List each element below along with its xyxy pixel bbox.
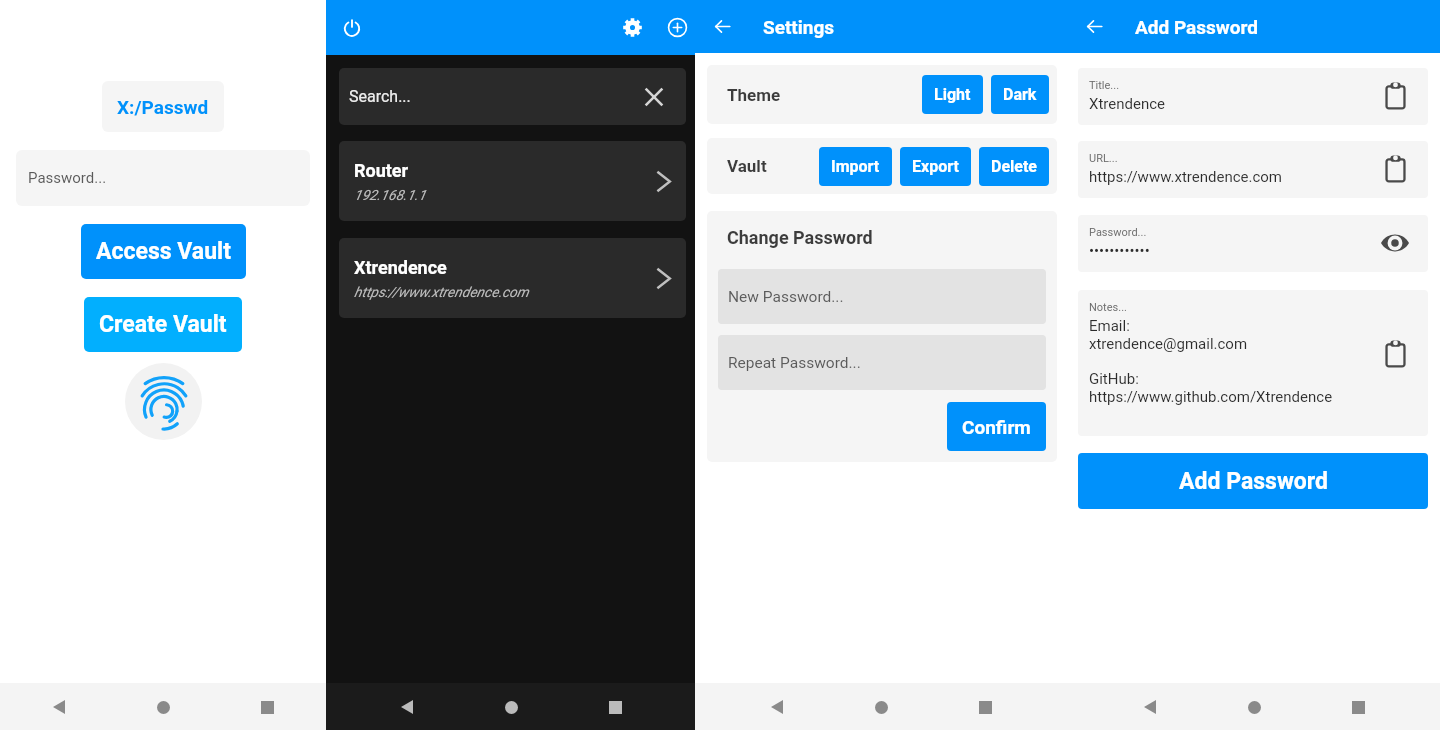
staticText: Search... [349, 87, 411, 106]
button[interactable]: Copy [1378, 79, 1412, 113]
button[interactable]: Password... [16, 150, 310, 206]
button[interactable]: Home [1231, 684, 1277, 730]
staticText: Vault [727, 156, 767, 176]
staticText: Confirm [962, 416, 1031, 438]
staticText: Password... [28, 169, 107, 187]
button[interactable]: Password... [1078, 215, 1428, 272]
staticText: New Password... [728, 288, 844, 306]
button[interactable]: Copy [1378, 152, 1412, 186]
button[interactable]: Confirm [947, 402, 1046, 451]
staticText: Repeat Password... [728, 354, 861, 372]
button[interactable]: Recents [592, 684, 638, 730]
staticText: 192.168.1.1 [354, 187, 426, 203]
button[interactable]: Recents [244, 684, 290, 730]
staticText: https://www.github.com/Xtrendence [1089, 388, 1333, 406]
button[interactable]: Dark [991, 75, 1049, 114]
button[interactable]: Back [1076, 8, 1113, 45]
button[interactable]: New Password... [718, 269, 1046, 324]
button[interactable]: Create Vault [84, 297, 242, 352]
button[interactable]: Back [1127, 684, 1173, 730]
button[interactable]: Search... [339, 68, 686, 125]
staticText: Light [934, 85, 971, 104]
button[interactable]: Back [36, 684, 82, 730]
staticText: •••••••••••• [1089, 242, 1150, 260]
staticText: https://www.xtrendence.com [1089, 168, 1283, 186]
button[interactable]: Back [754, 684, 800, 730]
button[interactable]: Show password [1378, 226, 1412, 260]
button[interactable]: Back [384, 684, 430, 730]
staticText: Router [354, 160, 409, 181]
button[interactable]: Router [339, 141, 686, 221]
staticText: Change Password [727, 227, 873, 248]
staticText: Xtrendence [1089, 95, 1165, 113]
staticText: Access Vault [96, 238, 231, 265]
staticText: Import [831, 157, 880, 176]
button[interactable]: Export [900, 147, 971, 186]
staticText: Theme [727, 85, 781, 105]
button[interactable]: Add Password [1078, 453, 1428, 509]
button[interactable]: Add password [661, 11, 694, 44]
staticText: Title... [1089, 79, 1120, 92]
staticText: Delete [991, 157, 1037, 176]
staticText: Export [912, 157, 959, 176]
button[interactable]: X:/Passwd [102, 81, 224, 132]
button[interactable]: Recents [1335, 684, 1381, 730]
button[interactable]: URL... [1078, 141, 1428, 198]
staticText: https://www.xtrendence.com [354, 284, 529, 300]
button[interactable]: Access Vault [81, 224, 246, 279]
button[interactable]: Recents [962, 684, 1008, 730]
button[interactable]: Xtrendence [339, 238, 686, 318]
staticText: GitHub: [1089, 370, 1139, 388]
button[interactable]: Fingerprint unlock [125, 363, 202, 440]
button[interactable]: Title... [1078, 68, 1428, 125]
button[interactable]: Settings [616, 11, 649, 44]
button[interactable]: Light [922, 75, 983, 114]
staticText: Add Password [1179, 468, 1328, 495]
button[interactable]: Lock vault [333, 9, 371, 47]
staticText: Password... [1089, 226, 1147, 239]
staticText: Create Vault [99, 311, 227, 338]
button[interactable]: Delete [979, 147, 1049, 186]
button[interactable]: Home [488, 684, 534, 730]
button[interactable]: Back [704, 8, 741, 45]
staticText: X:/Passwd [117, 96, 209, 118]
button[interactable]: Repeat Password... [718, 335, 1046, 390]
button[interactable]: Import [819, 147, 892, 186]
button[interactable]: Home [140, 684, 186, 730]
staticText: Dark [1003, 85, 1037, 104]
staticText: Settings [763, 16, 835, 38]
button[interactable]: Home [858, 684, 904, 730]
button[interactable]: Notes... [1078, 290, 1428, 436]
staticText: Xtrendence [354, 257, 447, 278]
staticText: Add Password [1135, 16, 1259, 38]
staticText: xtrendence@gmail.com [1089, 335, 1248, 353]
staticText: Notes... [1089, 301, 1127, 314]
staticText: Email: [1089, 317, 1130, 335]
staticText: URL... [1089, 152, 1118, 165]
button[interactable]: Copy [1378, 337, 1412, 371]
